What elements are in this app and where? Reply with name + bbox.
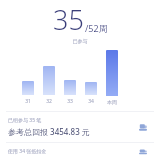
staticText: 已组参与 35 笔 (8, 117, 42, 124)
button[interactable]: 使用 34 张抵扣金 (0, 143, 160, 160)
staticText: 本周 (107, 99, 117, 105)
staticText: 已参与 (0, 38, 160, 44)
other: Coupon savings details (136, 148, 150, 155)
staticText: 32 (46, 98, 52, 105)
staticText: 31 (25, 98, 31, 105)
staticText: /52周 (85, 22, 108, 34)
staticText: 35 (53, 1, 84, 38)
staticText: 参考总回报 3454.83 元 (8, 126, 90, 137)
staticText: 使用 34 张抵扣金 (8, 148, 47, 155)
staticText: 34 (88, 98, 94, 105)
other: Total return details (136, 120, 150, 134)
button[interactable]: 已组参与 35 笔 (0, 112, 160, 142)
staticText: 33 (67, 98, 73, 105)
